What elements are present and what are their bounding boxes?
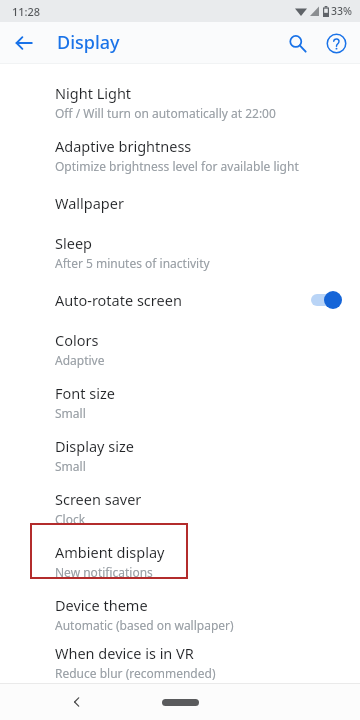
button[interactable]: Display size — [0, 428, 360, 481]
staticText: Ambient display — [55, 542, 165, 562]
button[interactable]: Auto-rotate screen — [308, 289, 344, 311]
staticText: Small — [55, 405, 86, 421]
button[interactable]: Night Light — [0, 75, 360, 128]
staticText: After 5 minutes of inactivity — [55, 255, 210, 271]
staticText: Off / Will turn on automatically at 22:0… — [55, 105, 276, 121]
staticText: Optimize brightness level for available … — [55, 158, 299, 174]
button[interactable]: Home — [158, 693, 202, 711]
button[interactable]: Wallpaper — [0, 181, 360, 225]
button[interactable]: Back — [62, 687, 92, 717]
staticText: Display size — [55, 436, 134, 456]
staticText: Night Light — [55, 83, 132, 103]
staticText: Display — [57, 30, 120, 55]
staticText: Adaptive — [55, 352, 105, 368]
staticText: 11:28 — [12, 4, 41, 19]
staticText: Sleep — [55, 233, 92, 253]
button[interactable]: When device is in VR — [0, 640, 360, 683]
staticText: Reduce blur (recommended) — [55, 665, 216, 681]
button[interactable]: Colors — [0, 322, 360, 375]
staticText: Auto-rotate screen — [55, 290, 182, 310]
staticText: Colors — [55, 330, 99, 350]
staticText: Font size — [55, 383, 115, 403]
staticText: Small — [55, 458, 86, 474]
button[interactable]: Help — [319, 26, 353, 60]
button[interactable]: Adaptive brightness — [0, 128, 360, 181]
staticText: 33% — [331, 4, 352, 18]
button[interactable]: Auto-rotate screen — [0, 278, 360, 322]
staticText: Clock — [55, 511, 86, 527]
button[interactable]: Font size — [0, 375, 360, 428]
staticText: Wallpaper — [55, 193, 124, 213]
staticText: Automatic (based on wallpaper) — [55, 617, 234, 633]
button[interactable]: Ambient display — [0, 534, 360, 587]
staticText: When device is in VR — [55, 643, 194, 663]
button[interactable]: Screen saver — [0, 481, 360, 534]
button[interactable]: Device theme — [0, 587, 360, 640]
button[interactable]: Back — [7, 26, 40, 59]
button[interactable]: Search — [280, 26, 314, 60]
staticText: Device theme — [55, 595, 148, 615]
staticText: New notifications — [55, 564, 153, 580]
button[interactable]: Sleep — [0, 225, 360, 278]
staticText: Adaptive brightness — [55, 136, 192, 156]
staticText: Screen saver — [55, 489, 142, 509]
